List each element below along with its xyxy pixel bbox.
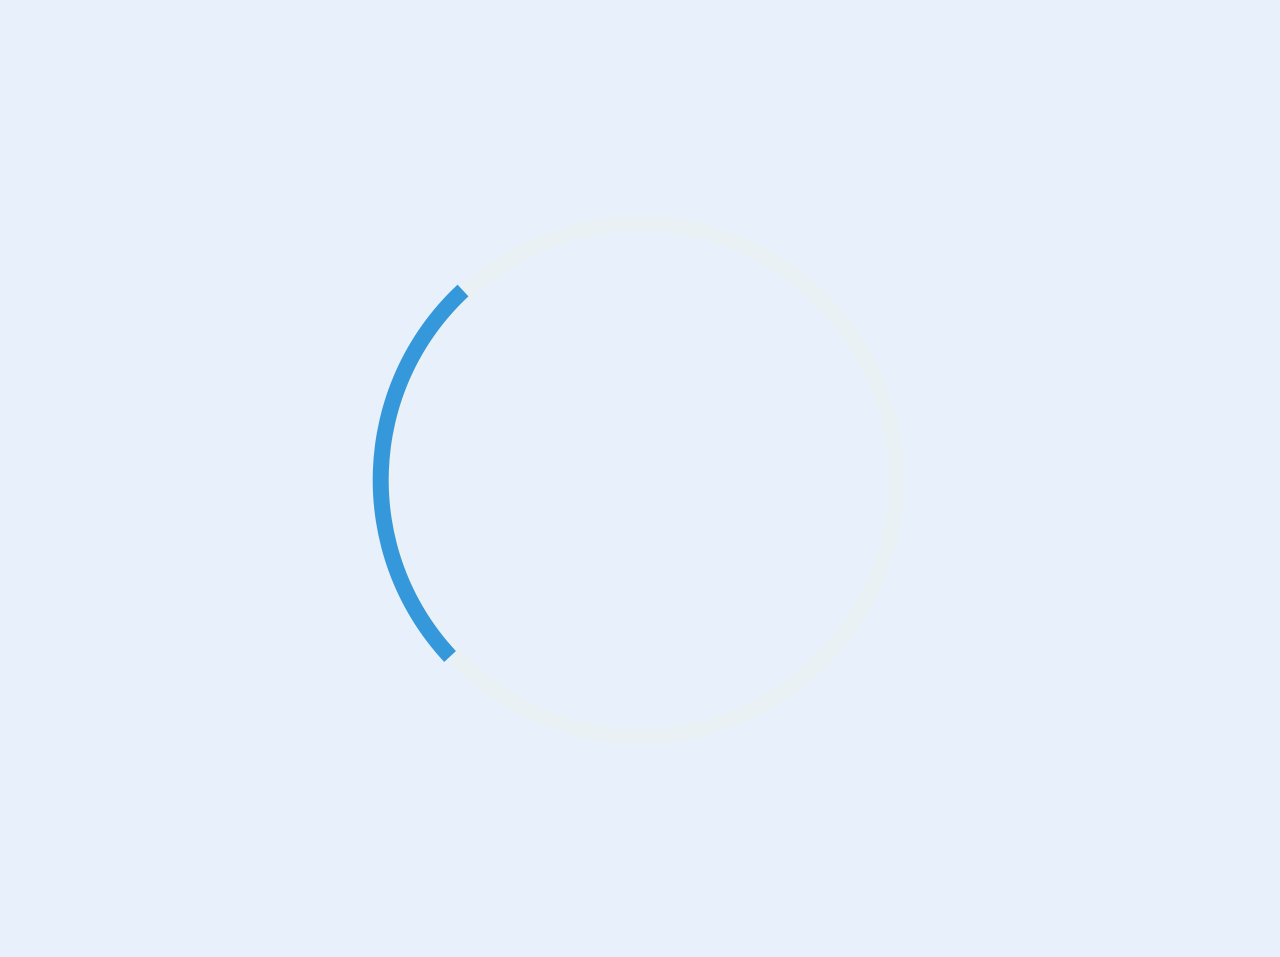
group: Loading (360, 198, 920, 758)
